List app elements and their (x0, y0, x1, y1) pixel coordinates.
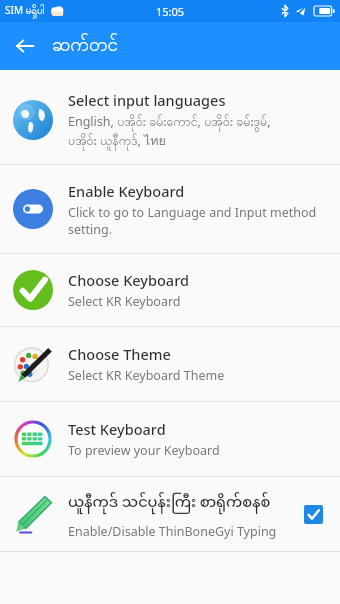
staticText: Click to go to Language and Input method… (68, 204, 317, 237)
button[interactable]: Choose Keyboard (0, 254, 340, 326)
staticText: SIM မရှိပါ (5, 3, 45, 19)
button[interactable]: Choose Theme (0, 327, 340, 401)
button[interactable]: ယူနီကုဒ် သင်ပုန်းကြီး စာရိုက်စနစ် (0, 477, 340, 551)
staticText: Choose Keyboard (68, 270, 189, 290)
staticText: ယူနီကုဒ် သင်ပုန်းကြီး စာရိုက်စနစ် (68, 488, 271, 520)
staticText: Test Keyboard (68, 419, 166, 439)
button[interactable]: Select input languages (0, 76, 340, 164)
staticText: To preview your Keyboard (68, 442, 220, 459)
button[interactable]: Enable Keyboard (0, 165, 340, 253)
staticText: ဆက်တင် (52, 32, 118, 60)
button[interactable]: Test Keyboard (0, 402, 340, 476)
button[interactable]: Back (6, 27, 44, 65)
button[interactable]: Toggle ThinBoneGyi typing (296, 497, 330, 531)
staticText: English, ပအိုဝ်း ခမ်းကောင်, ပအိုဝ်း ခမ်း… (68, 113, 271, 151)
staticText: Enable/Disable ThinBoneGyi Typing (68, 523, 277, 540)
staticText: Select KR Keyboard Theme (68, 367, 225, 384)
staticText: Choose Theme (68, 344, 171, 364)
staticText: Select input languages (68, 90, 226, 110)
staticText: Enable Keyboard (68, 181, 185, 201)
staticText: Select KR Keyboard (68, 293, 181, 310)
staticText: 15:05 (156, 4, 185, 19)
